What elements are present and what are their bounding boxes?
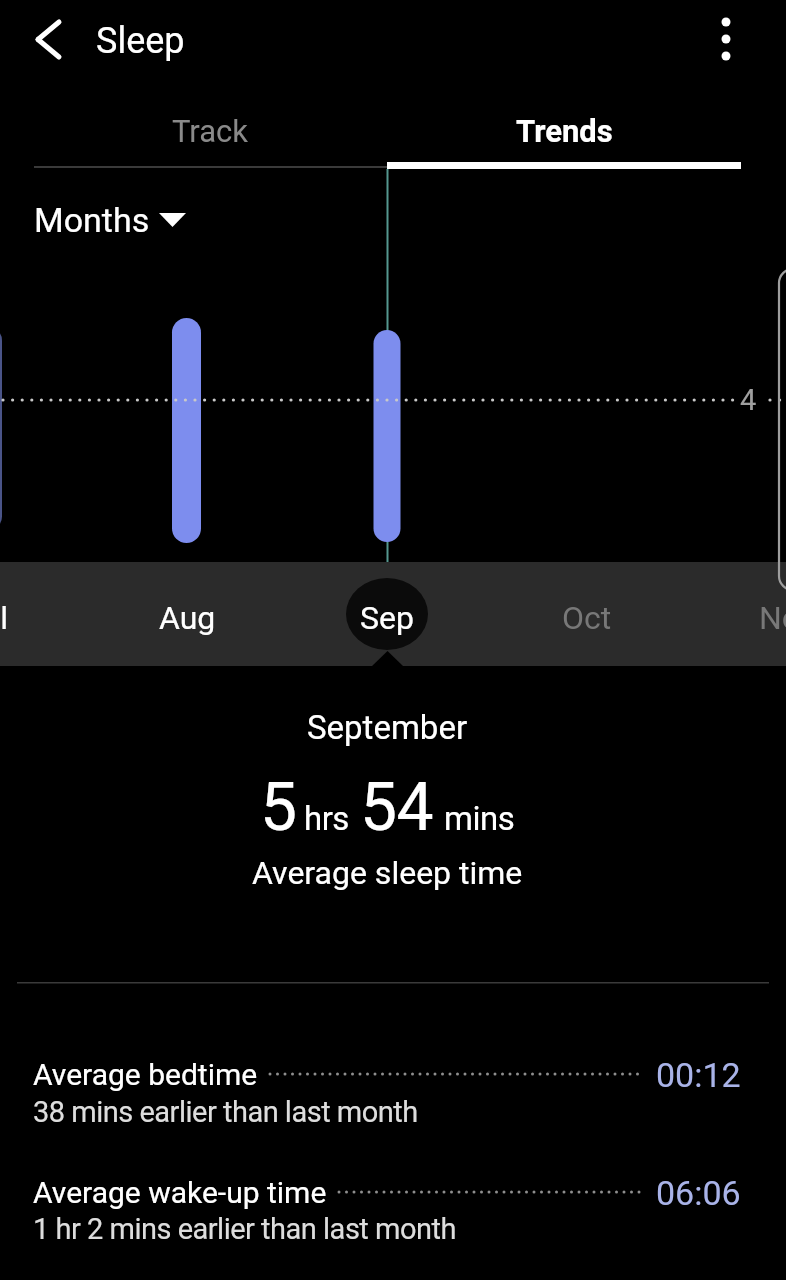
staticText: Aug	[159, 599, 216, 637]
button[interactable]: Sep	[327, 582, 447, 654]
staticText: Average sleep time	[252, 854, 523, 892]
staticText: 38 mins earlier than last month	[33, 1095, 418, 1129]
staticText: 00:12	[656, 1055, 741, 1093]
staticText: Jul	[0, 599, 9, 637]
button[interactable]: Oct	[527, 588, 647, 648]
staticText: Average bedtime	[33, 1057, 258, 1092]
button[interactable]	[706, 10, 746, 68]
staticText: 06:06	[656, 1173, 741, 1211]
button[interactable]: Nov	[727, 588, 786, 648]
staticText: Sep	[360, 599, 414, 637]
staticText: 5	[260, 769, 297, 846]
staticText: Track	[172, 113, 249, 149]
staticText: 54	[360, 769, 434, 846]
button[interactable]: Trends	[464, 101, 664, 161]
staticText: September	[307, 708, 468, 747]
staticText: Nov	[759, 599, 786, 637]
staticText: Months	[34, 200, 150, 240]
staticText: Trends	[516, 113, 613, 149]
button[interactable]: Average bedtime	[33, 1055, 741, 1093]
staticText: hrs	[304, 799, 349, 838]
button[interactable]: Average wake-up time	[33, 1173, 741, 1211]
button[interactable]: Track	[110, 101, 310, 161]
staticText: 1 hr 2 mins earlier than last month	[33, 1212, 456, 1246]
button[interactable]: Months	[24, 192, 200, 248]
button[interactable]: Aug	[127, 588, 247, 648]
staticText: Oct	[562, 599, 612, 637]
staticText: Sleep	[96, 20, 185, 62]
staticText: 4	[740, 383, 757, 417]
button[interactable]	[24, 14, 74, 64]
staticText: mins	[444, 799, 515, 838]
button[interactable]: Jul	[0, 588, 47, 648]
staticText: Average wake-up time	[33, 1175, 327, 1210]
